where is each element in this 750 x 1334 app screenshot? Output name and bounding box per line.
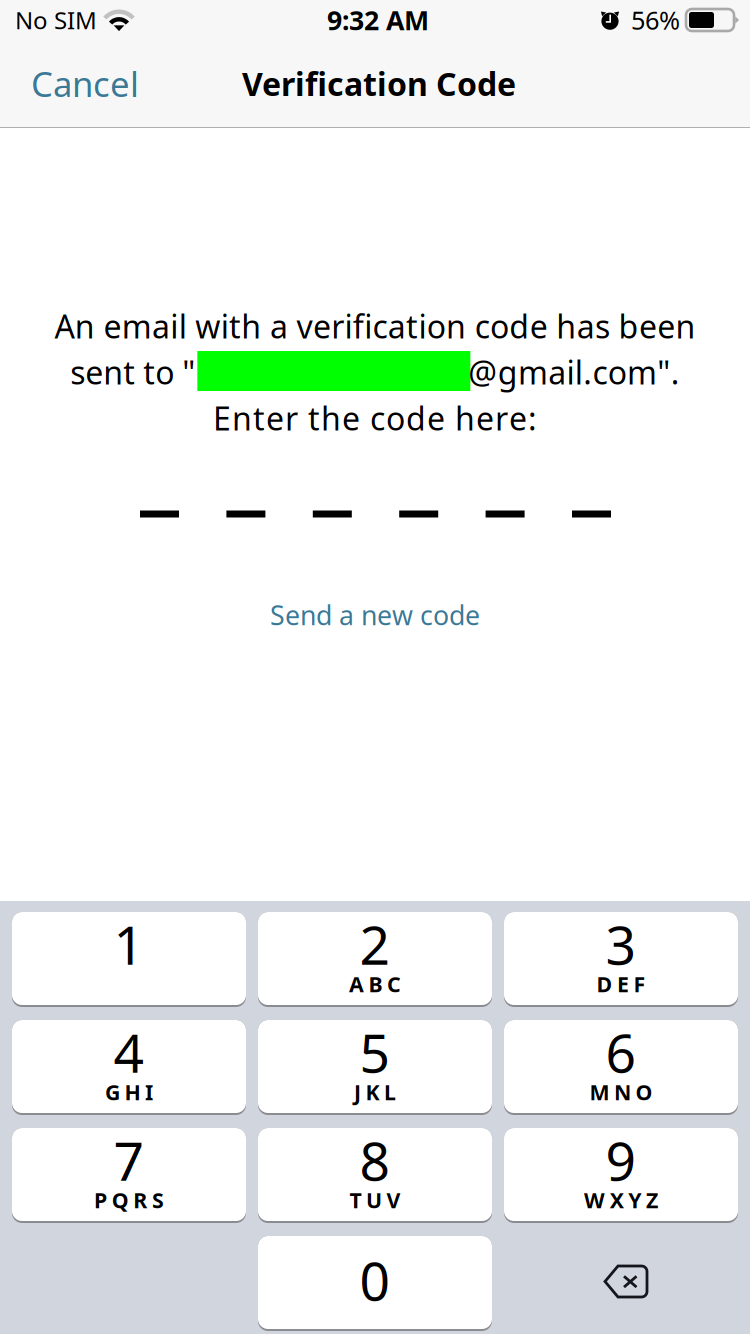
staticText: Enter the code here: [213, 396, 537, 440]
staticText: JKL [354, 1077, 396, 1107]
staticText: TUV [349, 1185, 401, 1215]
staticText: ABC [349, 969, 401, 999]
staticText: 9:32 AM [327, 2, 429, 38]
staticText: PQRS [94, 1185, 164, 1215]
staticText: 8 [359, 1124, 390, 1196]
button[interactable]: 4 [12, 1020, 246, 1115]
button[interactable]: Send a new code [244, 585, 506, 645]
staticText: 3 [605, 908, 636, 980]
button[interactable]: 9 [504, 1128, 738, 1223]
staticText: GHI [105, 1077, 153, 1107]
staticText: Verification Code [242, 62, 516, 105]
button[interactable]: Delete [504, 1236, 738, 1331]
staticText: 0 [359, 1244, 390, 1316]
staticText: WXYZ [584, 1185, 658, 1215]
staticText: 2 [359, 908, 390, 980]
staticText: 9 [605, 1124, 636, 1196]
staticText: 5 [359, 1016, 390, 1088]
staticText: @gmail.com". [468, 350, 680, 394]
staticText: No SIM [15, 4, 97, 36]
button[interactable]: 0 [258, 1236, 492, 1331]
staticText: sent to " [70, 350, 195, 394]
staticText: Send a new code [270, 597, 480, 633]
button[interactable]: 8 [258, 1128, 492, 1223]
staticText: 6 [605, 1016, 636, 1088]
button[interactable]: 2 [258, 912, 492, 1007]
staticText: 56% [631, 3, 680, 37]
staticText: An email with a verification code has be… [54, 304, 695, 348]
staticText: 4 [113, 1016, 144, 1088]
staticText: 7 [113, 1124, 144, 1196]
staticText: DEF [596, 969, 646, 999]
staticText: 1 [113, 908, 144, 980]
button[interactable]: 3 [504, 912, 738, 1007]
button[interactable]: 5 [258, 1020, 492, 1115]
button[interactable]: 1 [12, 912, 246, 1007]
button[interactable]: 6 [504, 1020, 738, 1115]
button[interactable]: 7 [12, 1128, 246, 1223]
staticText: MNO [589, 1077, 653, 1107]
button[interactable]: Cancel [17, 46, 153, 121]
staticText: Cancel [31, 60, 139, 107]
